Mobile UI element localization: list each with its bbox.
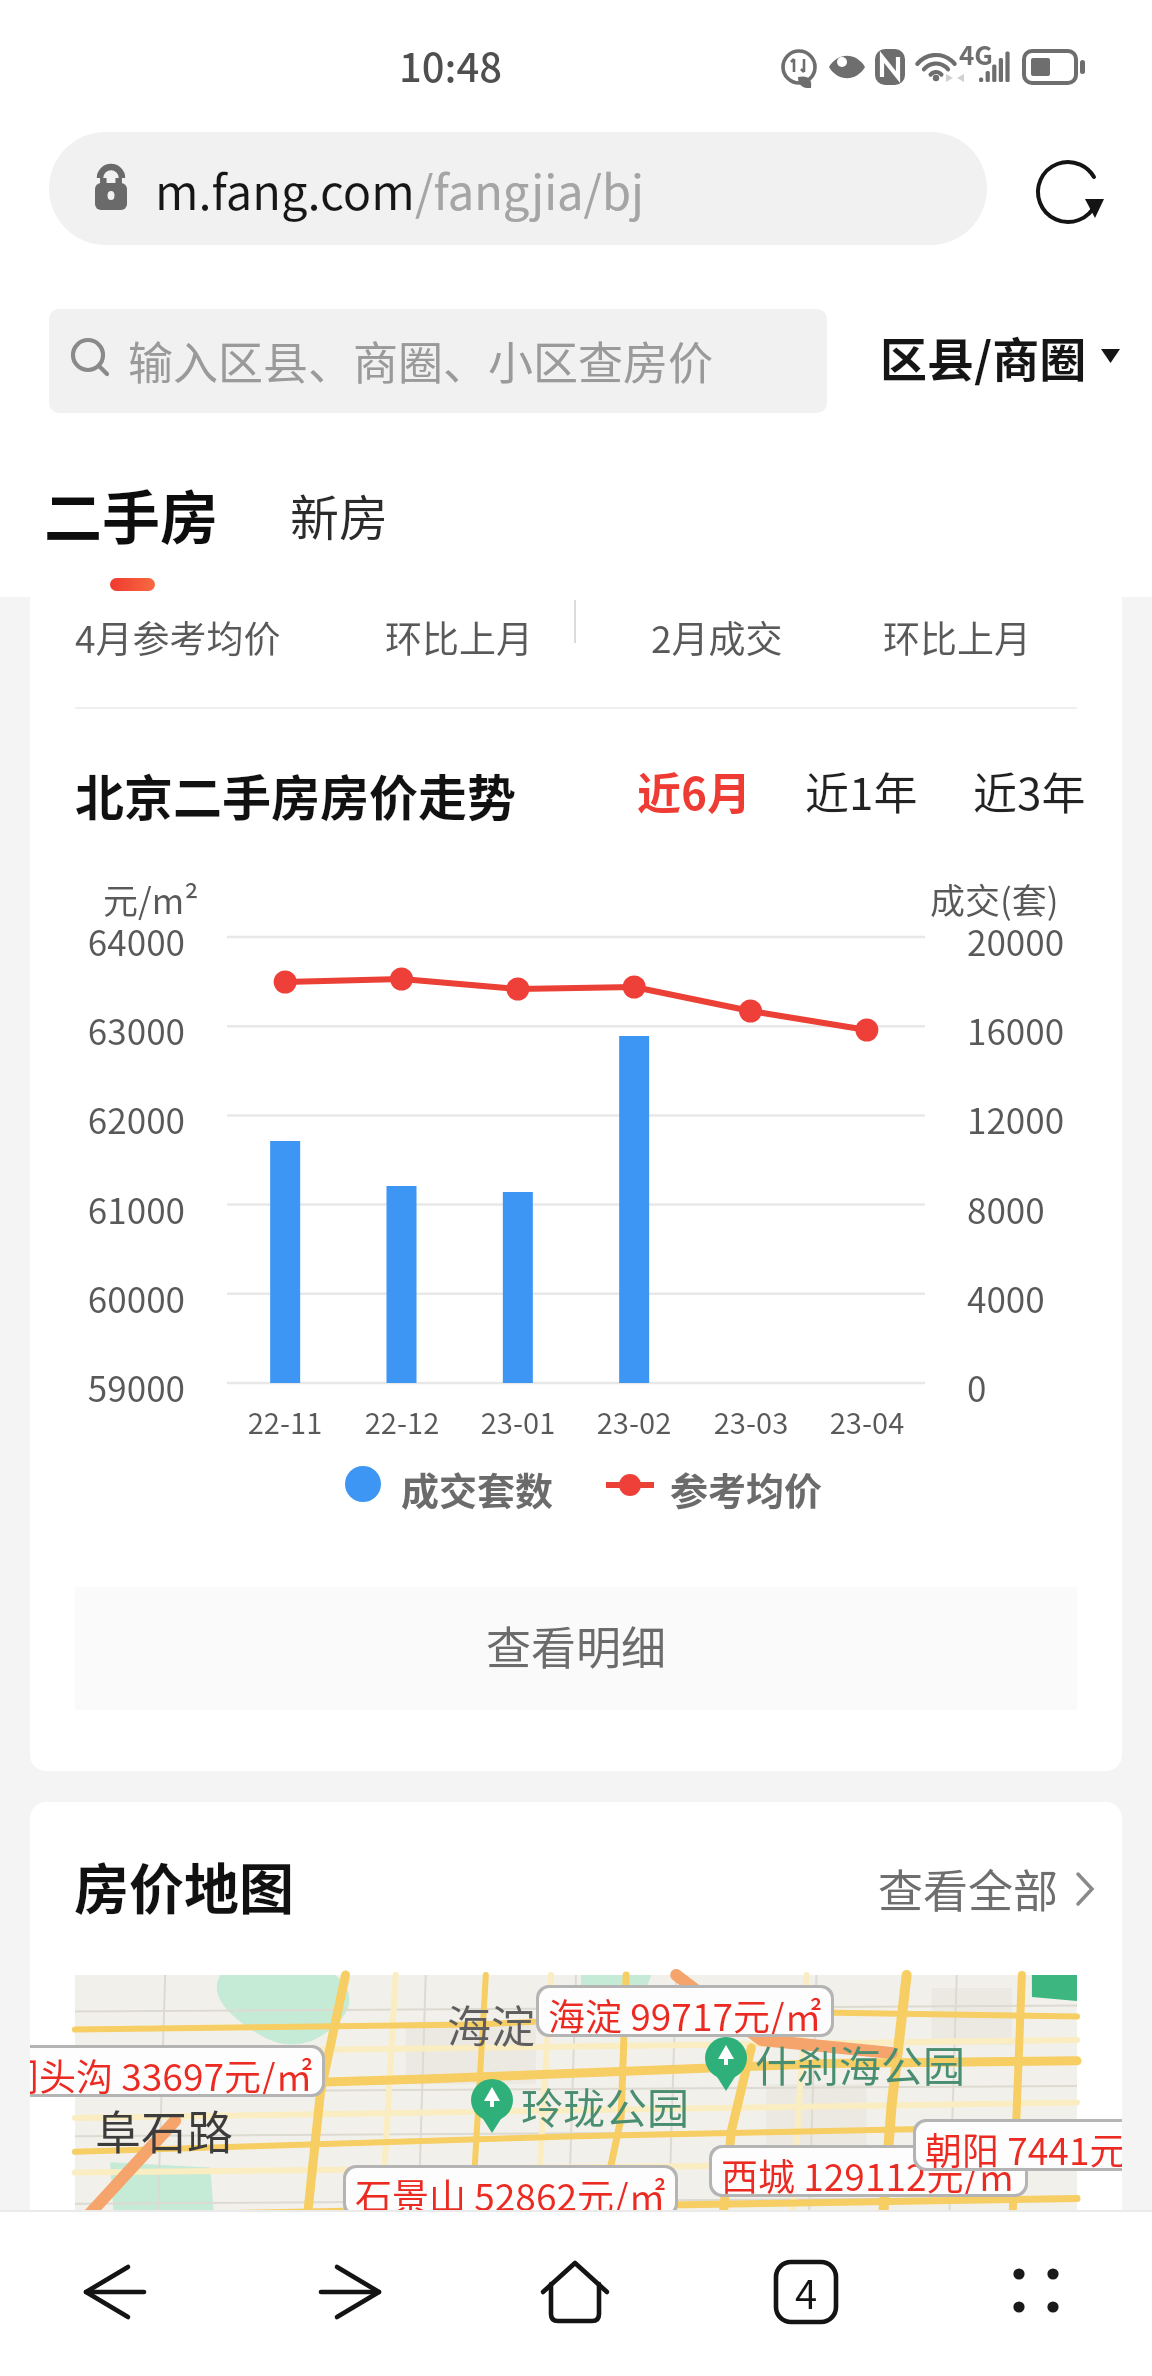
staticText: 查看明细 [486, 1613, 667, 1678]
staticText: 23-03 [681, 1400, 821, 1442]
staticText: 64000 [35, 915, 185, 966]
staticText: 12000 [967, 1093, 1065, 1144]
staticText: 近3年 [973, 759, 1086, 823]
staticText: 22-11 [215, 1400, 355, 1442]
staticText: 59000 [35, 1361, 185, 1412]
button[interactable]: Back [65, 2242, 165, 2342]
button[interactable]: Price map [75, 1975, 1077, 2235]
staticText: 23-01 [448, 1400, 588, 1442]
staticText: 北京二手房房价走势 [75, 759, 517, 830]
staticText: 62000 [35, 1093, 185, 1144]
staticText: 区县/商圈 [880, 322, 1087, 390]
button[interactable]: Forward [300, 2242, 400, 2342]
staticText: 20000 [967, 915, 1065, 966]
staticText: 近6月 [637, 759, 751, 823]
staticText: 近1年 [805, 759, 918, 823]
staticText: /fangjia/bj [415, 155, 644, 223]
staticText: 元/m² [103, 873, 199, 924]
button[interactable]: m.fang.com [49, 132, 987, 245]
button[interactable]: Tabs [756, 2242, 856, 2342]
staticText: 23-02 [564, 1400, 704, 1442]
button[interactable]: Home [525, 2242, 625, 2342]
staticText: 4000 [967, 1272, 1045, 1323]
staticText: 西城 129112元/㎡ [721, 2148, 1016, 2194]
staticText: 二手房 [44, 472, 219, 556]
button[interactable]: Reload [1028, 152, 1108, 232]
staticText: 阜石路 [95, 2096, 233, 2163]
staticText: 4月参考均价 [75, 610, 281, 664]
button[interactable]: 输入区县、商圈、小区查房价 [49, 309, 827, 413]
staticText: 玲珑公园 [521, 2075, 690, 2136]
staticText: 10:48 [399, 36, 503, 94]
staticText: 22-12 [332, 1400, 472, 1442]
staticText: 新房 [290, 479, 389, 550]
staticText: 4G [959, 35, 993, 73]
staticText: 成交(套) [930, 873, 1059, 924]
staticText: 2月成交 [651, 610, 783, 664]
button[interactable]: 区县/商圈 [880, 322, 1120, 390]
staticText: 房价地图 [74, 1845, 295, 1925]
button[interactable]: 近6月 [637, 759, 751, 823]
staticText: 63000 [35, 1004, 185, 1055]
staticText: 4 [795, 2263, 818, 2321]
staticText: 环比上月 [385, 610, 533, 664]
staticText: 环比上月 [883, 610, 1031, 664]
staticText: 输入区县、商圈、小区查房价 [128, 328, 714, 393]
staticText: 成交套数 [401, 1461, 554, 1516]
staticText: 0 [967, 1361, 987, 1412]
staticText: 什刹海公园 [755, 2033, 966, 2094]
staticText: 海淀 99717元/㎡ [548, 1988, 822, 2034]
button[interactable]: 查看全部 [878, 1856, 1097, 1921]
button[interactable]: 近1年 [805, 759, 918, 823]
staticText: 16000 [967, 1004, 1065, 1055]
staticText: 60000 [35, 1272, 185, 1323]
staticText: 查看全部 [878, 1856, 1059, 1921]
button[interactable]: 新房 [290, 479, 389, 550]
button[interactable]: 近3年 [973, 759, 1086, 823]
staticText: 门头沟 33697元/㎡ [30, 2048, 313, 2094]
button[interactable]: 查看明细 [75, 1587, 1077, 1710]
staticText: 朝阳 7441元/㎡ [925, 2122, 1122, 2168]
button[interactable]: More options [986, 2242, 1086, 2342]
staticText: 23-04 [797, 1400, 937, 1442]
staticText: 石景山 52862元/㎡ [355, 2168, 666, 2214]
staticText: 61000 [35, 1183, 185, 1234]
staticText: 海淀 [447, 1992, 535, 2056]
staticText: 参考均价 [670, 1461, 823, 1516]
button[interactable]: 二手房 [44, 472, 219, 556]
staticText: m.fang.com [155, 155, 415, 223]
staticText: 8000 [967, 1183, 1045, 1234]
